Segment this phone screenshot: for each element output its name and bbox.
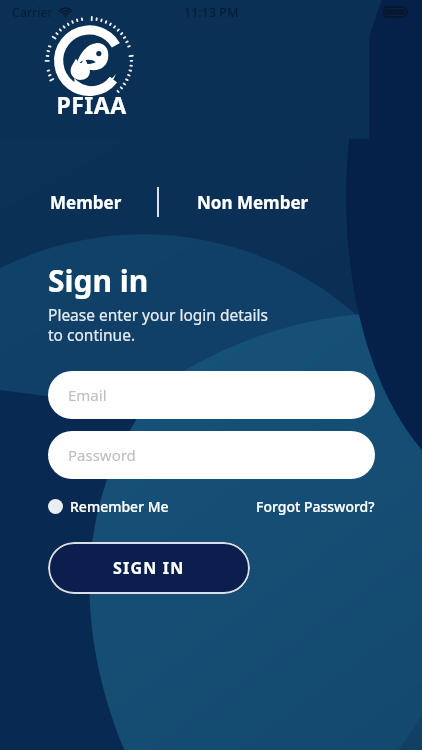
staticText: Please enter your login details to conti… <box>48 304 268 346</box>
button[interactable]: Member <box>48 185 124 220</box>
other: PFIAA logo <box>42 28 146 120</box>
staticText: 11:13 PM <box>184 4 239 21</box>
staticText: Member <box>50 191 122 214</box>
button[interactable]: Email <box>48 371 375 419</box>
staticText: Remember Me <box>70 497 169 516</box>
staticText: PFIAA <box>56 89 127 120</box>
staticText: Forgot Password? <box>256 497 375 516</box>
staticText: Non Member <box>197 191 309 214</box>
button[interactable]: Remember Me <box>48 493 169 520</box>
button[interactable]: Password <box>48 431 375 479</box>
button[interactable]: SIGN IN <box>48 542 250 594</box>
staticText: Email <box>68 385 107 405</box>
staticText: Carrier <box>12 4 53 21</box>
button[interactable]: Forgot Password? <box>256 493 375 520</box>
button[interactable]: Non Member <box>195 185 311 220</box>
staticText: Password <box>68 445 136 465</box>
staticText: Sign in <box>48 260 149 301</box>
staticText: SIGN IN <box>113 557 185 579</box>
